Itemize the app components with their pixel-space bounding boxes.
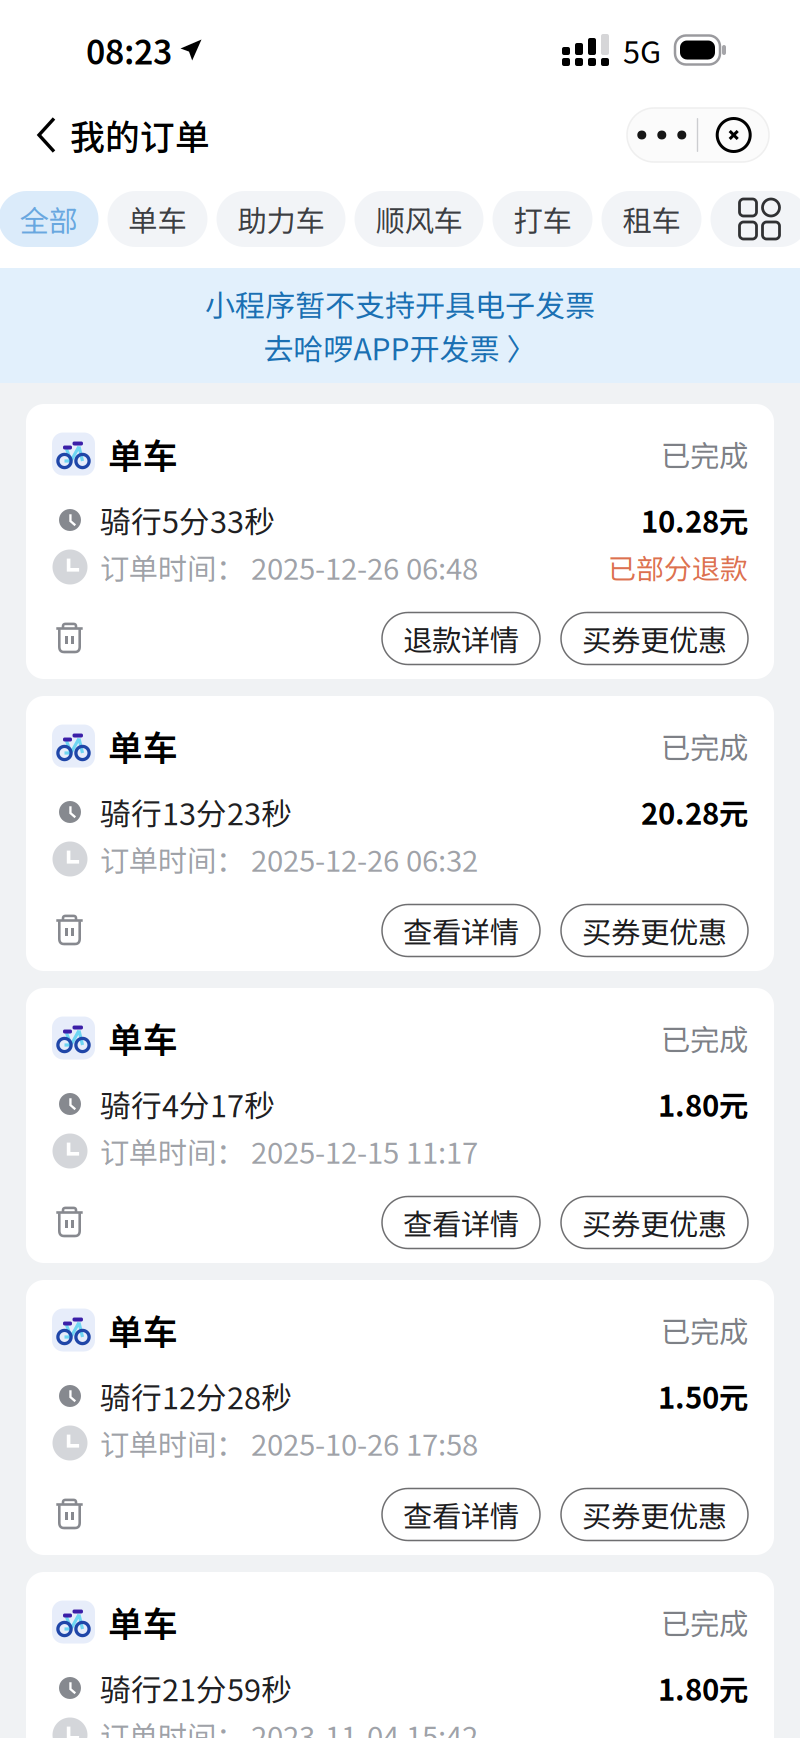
staticText: 骑行5分33秒 (100, 498, 275, 542)
staticText: 订单时间： (100, 838, 245, 880)
staticText: 骑行13分23秒 (100, 790, 292, 834)
staticText: 订单时间： (100, 1422, 245, 1464)
staticText: 2025-12-15 11:17 (251, 1130, 478, 1172)
staticText: 打车 (513, 198, 571, 240)
staticText: 骑行21分59秒 (100, 1666, 292, 1710)
staticText: 单车 (108, 1013, 178, 1063)
staticText: 20.28元 (641, 791, 748, 833)
staticText: 骑行12分28秒 (100, 1374, 292, 1418)
staticText: 全部 (19, 198, 77, 240)
staticText: 去哈啰APP开发票 〉 (263, 325, 536, 369)
staticText: 已完成 (661, 433, 748, 475)
button[interactable]: 全部分类 (710, 191, 800, 247)
staticText: 查看详情 (403, 909, 519, 952)
button[interactable]: 查看详情 (382, 904, 540, 956)
staticText: 2023-11-04 15:42 (251, 1714, 478, 1738)
button[interactable]: 删除订单 (52, 900, 110, 960)
staticText: 查看详情 (403, 1201, 519, 1244)
staticText: 单车 (108, 1305, 178, 1355)
staticText: 订单时间： (100, 1714, 245, 1738)
staticText: 2025-12-26 06:32 (251, 838, 478, 880)
staticText: 08:23 (86, 26, 172, 74)
button[interactable]: 顺风车 (354, 191, 483, 247)
staticText: 10.28元 (641, 499, 748, 541)
staticText: 订单时间： (100, 546, 245, 588)
staticText: 订单时间： (100, 1130, 245, 1172)
staticText: 买券更优惠 (582, 1201, 727, 1244)
button[interactable]: 全部 (0, 191, 98, 247)
staticText: 1.80元 (658, 1083, 748, 1125)
button[interactable]: 更多 (627, 108, 697, 162)
staticText: 助力车 (237, 198, 324, 240)
button[interactable]: 买券更优惠 (561, 612, 748, 664)
staticText: 单车 (108, 429, 178, 479)
button[interactable]: 租车 (601, 191, 701, 247)
staticText: 单车 (128, 198, 186, 240)
button[interactable]: 助力车 (216, 191, 345, 247)
button[interactable]: 删除订单 (52, 1192, 110, 1252)
staticText: 租车 (622, 198, 680, 240)
button[interactable]: 小程序暂不支持开具电子发票 (0, 268, 800, 383)
button[interactable]: 买券更优惠 (561, 904, 748, 956)
staticText: 已完成 (661, 1601, 748, 1643)
staticText: 单车 (108, 1597, 178, 1647)
button[interactable]: 我的订单 (0, 100, 226, 170)
button[interactable]: 买券更优惠 (561, 1196, 748, 1248)
button[interactable]: 删除订单 (52, 608, 110, 668)
staticText: 1.50元 (658, 1375, 748, 1417)
button[interactable]: 查看详情 (382, 1488, 540, 1540)
button[interactable]: 查看详情 (382, 1196, 540, 1248)
staticText: 已完成 (661, 1017, 748, 1059)
staticText: 退款详情 (403, 617, 519, 660)
button[interactable]: 买券更优惠 (561, 1488, 748, 1540)
staticText: 1.80元 (658, 1667, 748, 1709)
button[interactable]: 删除订单 (52, 1484, 110, 1544)
button[interactable]: 退款详情 (382, 612, 540, 664)
staticText: 已完成 (661, 1309, 748, 1351)
button[interactable]: 打车 (492, 191, 592, 247)
staticText: 已完成 (661, 725, 748, 767)
staticText: 查看详情 (403, 1493, 519, 1536)
staticText: 小程序暂不支持开具电子发票 (205, 282, 595, 325)
staticText: 买券更优惠 (582, 1493, 727, 1536)
button[interactable]: 关闭 (698, 108, 769, 162)
staticText: 买券更优惠 (582, 909, 727, 952)
staticText: 5G (623, 28, 661, 72)
staticText: 2025-10-26 17:58 (251, 1422, 478, 1464)
staticText: 已部分退款 (608, 547, 748, 587)
staticText: 2025-12-26 06:48 (251, 546, 478, 588)
staticText: 单车 (108, 721, 178, 771)
staticText: 我的订单 (70, 110, 210, 160)
staticText: 买券更优惠 (582, 617, 727, 660)
button[interactable]: 单车 (107, 191, 207, 247)
staticText: 骑行4分17秒 (100, 1082, 275, 1126)
staticText: 顺风车 (375, 198, 462, 240)
